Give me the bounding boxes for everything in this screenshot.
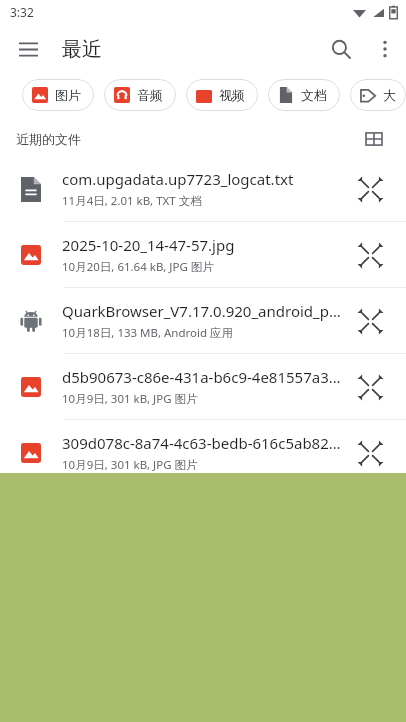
staticText: 文档 xyxy=(301,87,327,103)
button[interactable]: Expand xyxy=(350,235,390,275)
staticText: com.upgadata.up7723_logcat.txt xyxy=(62,169,294,189)
button[interactable]: QuarkBrowser_V7.17.0.920_android_pf… xyxy=(0,287,406,353)
button[interactable]: Expand xyxy=(350,367,390,407)
staticText: 大型文 xyxy=(383,87,393,103)
staticText: 图片 xyxy=(55,87,81,103)
button[interactable]: 2025-10-20_14-47-57.jpg xyxy=(0,221,406,287)
button[interactable]: Expand xyxy=(350,301,390,341)
button[interactable]: 大型文 xyxy=(350,79,406,111)
staticText: 11月4日, 2.01 kB, TXT 文档 xyxy=(62,193,202,209)
staticText: 3:32 xyxy=(10,4,34,20)
staticText: QuarkBrowser_V7.17.0.920_android_pf… xyxy=(62,301,342,321)
staticText: 最近 xyxy=(62,37,102,62)
staticText: 2025-10-20_14-47-57.jpg xyxy=(62,235,235,255)
staticText: d5b90673-c86e-431a-b6c9-4e81557a3… xyxy=(62,367,341,387)
button[interactable]: 图片 xyxy=(22,79,94,111)
button[interactable]: Expand xyxy=(350,433,390,473)
staticText: 309d078c-8a74-4c63-bedb-616c5ab82… xyxy=(62,433,341,453)
staticText: 10月20日, 61.64 kB, JPG 图片 xyxy=(62,259,214,275)
button[interactable]: Menu xyxy=(8,29,48,69)
button[interactable]: d5b90673-c86e-431a-b6c9-4e81557a3… xyxy=(0,353,406,419)
button[interactable]: 文档 xyxy=(268,79,340,111)
button[interactable]: com.upgadata.up7723_logcat.txt xyxy=(0,156,406,221)
staticText: 视频 xyxy=(219,87,245,103)
button[interactable]: 音频 xyxy=(104,79,176,111)
staticText: 10月18日, 133 MB, Android 应用 xyxy=(62,325,234,341)
button[interactable]: Grid view xyxy=(356,122,392,156)
button[interactable]: 视频 xyxy=(186,79,258,111)
staticText: 10月9日, 301 kB, JPG 图片 xyxy=(62,457,198,473)
button[interactable]: Expand xyxy=(350,169,390,209)
button[interactable]: Search xyxy=(318,26,364,72)
button[interactable]: More options xyxy=(364,28,406,70)
staticText: 近期的文件 xyxy=(16,131,81,147)
staticText: 音频 xyxy=(137,87,163,103)
staticText: 10月9日, 301 kB, JPG 图片 xyxy=(62,391,198,407)
button[interactable]: 309d078c-8a74-4c63-bedb-616c5ab82… xyxy=(0,419,406,485)
